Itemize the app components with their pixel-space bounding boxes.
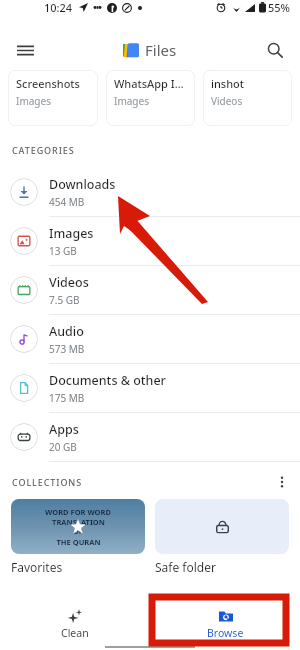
staticText: CATEGORIES [12, 144, 75, 156]
button[interactable]: Screenshots [8, 70, 98, 126]
staticText: WORD FOR WORD [45, 507, 111, 517]
staticText: Safe folder [155, 559, 216, 575]
staticText: 20 GB [49, 440, 77, 454]
button[interactable]: Documents & other [0, 364, 300, 412]
staticText: Screenshots [16, 76, 80, 91]
button[interactable]: Audio [0, 315, 300, 363]
staticText: Images [114, 94, 149, 108]
staticText: 573 MB [49, 342, 85, 356]
staticText: Files [145, 40, 177, 60]
staticText: Apps [49, 421, 79, 438]
staticText: 10:24 [44, 0, 73, 15]
button[interactable]: More options [270, 472, 294, 492]
button[interactable]: Downloads [0, 168, 300, 216]
button[interactable]: inshot [203, 70, 292, 126]
staticText: Downloads [49, 176, 116, 193]
button[interactable]: Clean [0, 598, 150, 650]
staticText: Browse [207, 626, 244, 640]
button[interactable]: Browse [150, 598, 300, 650]
staticText: 454 MB [49, 195, 85, 209]
staticText: THE QURAN [56, 537, 101, 547]
staticText: 175 MB [49, 391, 85, 405]
staticText: 55% [268, 0, 290, 15]
staticText: Favorites [11, 559, 63, 575]
button[interactable]: Videos [0, 266, 300, 314]
staticText: Images [16, 94, 51, 108]
button[interactable]: Search [258, 33, 292, 67]
staticText: Images [49, 225, 94, 242]
button[interactable]: Menu [8, 33, 42, 67]
staticText: Videos [49, 274, 89, 291]
staticText: Audio [49, 323, 84, 340]
button[interactable]: Images [0, 217, 300, 265]
staticText: COLLECTIONS [12, 476, 83, 488]
button[interactable]: WORD FOR WORD [11, 499, 145, 575]
staticText: Videos [211, 94, 243, 108]
button[interactable]: WhatsApp Imag… [106, 70, 195, 126]
staticText: TRANSLATION [52, 517, 105, 527]
staticText: inshot [211, 76, 245, 91]
staticText: OF [73, 527, 83, 537]
staticText: WhatsApp Imag… [114, 76, 191, 91]
staticText: 13 GB [49, 244, 77, 258]
staticText: 7.5 GB [49, 293, 80, 307]
staticText: Clean [61, 626, 89, 640]
staticText: Documents & other [49, 372, 166, 389]
button[interactable]: Safe folder [155, 499, 289, 575]
button[interactable]: Apps [0, 413, 300, 461]
